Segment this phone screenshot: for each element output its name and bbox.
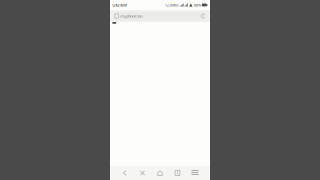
staticText: myphone.too (120, 13, 142, 19)
button[interactable]: Home (151, 166, 169, 180)
staticText: 5:42 AM (112, 2, 127, 8)
button[interactable]: Stop (134, 166, 151, 180)
staticText: 48% (194, 2, 201, 8)
button[interactable]: myphone.too (112, 11, 207, 20)
staticText: 12.00K/s (165, 2, 179, 8)
button[interactable]: Menu (186, 166, 204, 180)
button[interactable]: Back (116, 166, 134, 180)
button[interactable]: Tabs (169, 166, 186, 180)
